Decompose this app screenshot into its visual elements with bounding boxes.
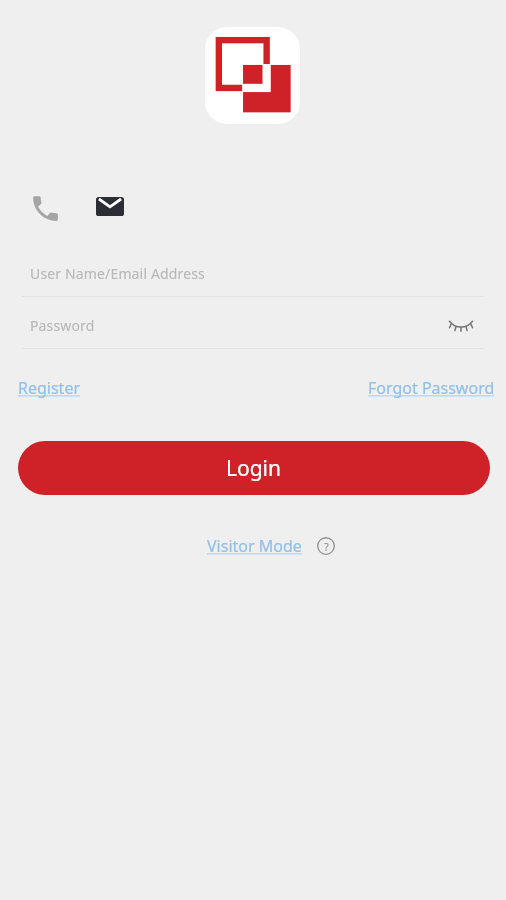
button[interactable]: User Name/Email Address <box>22 250 484 296</box>
button[interactable]: Login <box>18 441 490 495</box>
button[interactable]: Show password <box>444 309 477 342</box>
button[interactable]: Sign in with email <box>96 197 124 216</box>
button[interactable]: What is visitor mode? <box>314 534 338 558</box>
staticText: Register <box>18 377 81 399</box>
button[interactable]: Register <box>18 375 81 401</box>
staticText: Login <box>226 454 282 483</box>
staticText: Visitor Mode <box>207 535 302 557</box>
staticText: Password <box>30 316 95 335</box>
staticText: User Name/Email Address <box>30 264 205 283</box>
button[interactable]: Visitor Mode <box>207 533 302 559</box>
button[interactable]: Sign in with phone number <box>29 192 62 225</box>
button[interactable]: Forgot Password <box>368 375 495 401</box>
button[interactable]: Password <box>22 302 484 348</box>
staticText: Forgot Password <box>368 377 495 399</box>
staticText: ? <box>324 539 329 554</box>
